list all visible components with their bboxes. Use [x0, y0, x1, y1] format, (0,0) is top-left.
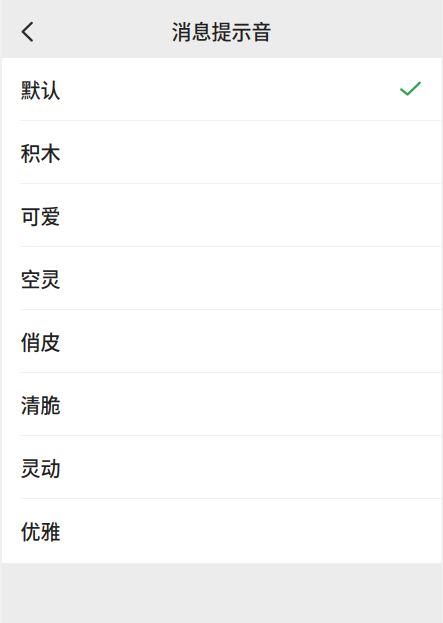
button[interactable]: 灵动 [0, 436, 443, 499]
button[interactable]: Back [0, 0, 52, 58]
staticText: 清脆 [20, 390, 60, 419]
staticText: 默认 [20, 75, 60, 104]
button[interactable]: 优雅 [0, 499, 443, 563]
button[interactable]: 空灵 [0, 247, 443, 310]
staticText: 俏皮 [20, 327, 60, 356]
button[interactable]: 可爱 [0, 184, 443, 247]
staticText: 积木 [20, 138, 60, 167]
button[interactable]: 俏皮 [0, 310, 443, 373]
staticText: 优雅 [20, 516, 60, 545]
button[interactable]: 默认 [0, 58, 443, 121]
staticText: 灵动 [20, 453, 60, 482]
staticText: 空灵 [20, 264, 60, 293]
button[interactable]: 积木 [0, 121, 443, 184]
button[interactable]: 清脆 [0, 373, 443, 436]
staticText: 消息提示音 [171, 16, 271, 45]
staticText: 可爱 [20, 201, 60, 230]
